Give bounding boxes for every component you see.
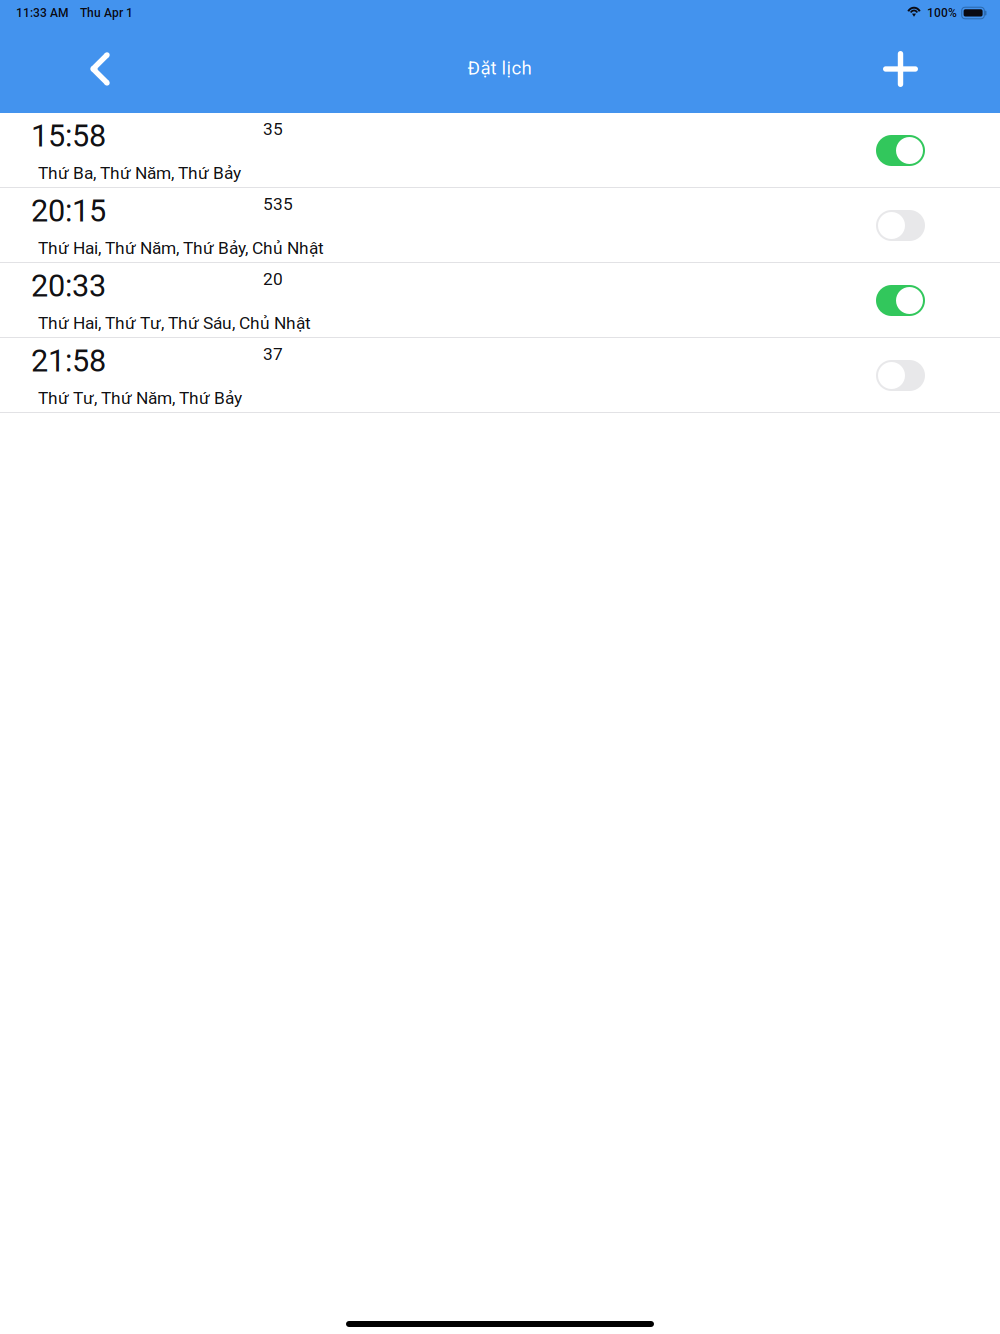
staticText: Thứ Tư, Thứ Năm, Thứ Bảy [38, 388, 242, 408]
staticText: 20:15 [31, 193, 106, 229]
button[interactable]: 20:15 [0, 188, 1000, 262]
staticText: 21:58 [31, 343, 106, 379]
staticText: 20 [263, 269, 283, 289]
staticText: Thứ Hai, Thứ Năm, Thứ Bảy, Chủ Nhật [38, 238, 324, 258]
button[interactable]: 21:58 [0, 338, 1000, 412]
staticText: Thu Apr 1 [80, 6, 133, 20]
staticText: 20:33 [31, 268, 106, 304]
staticText: 100% [927, 6, 957, 20]
staticText: Đặt lịch [467, 57, 531, 79]
button[interactable]: 15:58 [0, 113, 1000, 187]
staticText: 37 [263, 344, 283, 364]
staticText: 535 [263, 194, 293, 214]
button[interactable]: Add [853, 29, 949, 107]
staticText: 11:33 AM [16, 6, 68, 20]
staticText: 35 [263, 119, 283, 139]
staticText: 15:58 [31, 118, 106, 154]
staticText: Thứ Hai, Thứ Tư, Thứ Sáu, Chủ Nhật [38, 313, 311, 333]
button[interactable]: Back [60, 29, 156, 107]
button[interactable]: 20:33 [0, 263, 1000, 337]
staticText: Thứ Ba, Thứ Năm, Thứ Bảy [38, 163, 241, 183]
